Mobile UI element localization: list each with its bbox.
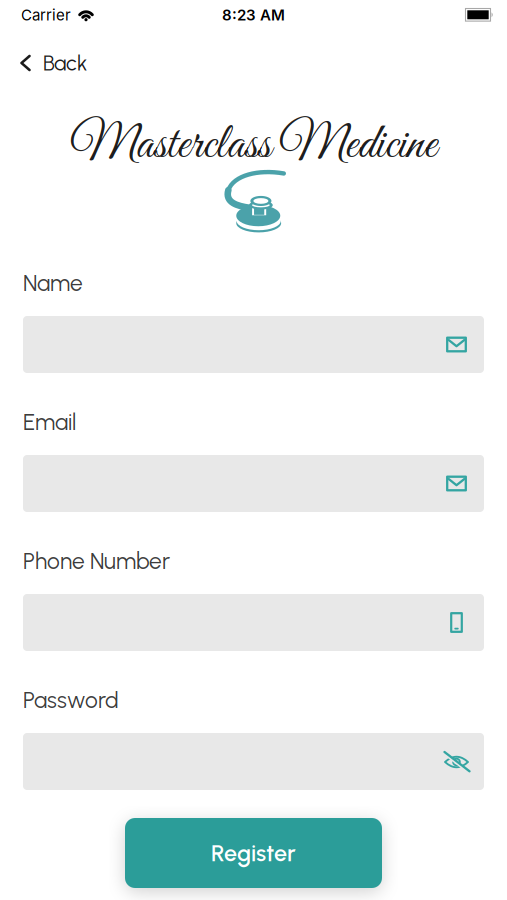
staticText: Carrier (21, 6, 71, 24)
staticText: Back (43, 50, 87, 76)
staticText: Name (23, 269, 83, 297)
staticText: Email (23, 408, 76, 436)
button[interactable]: Password (23, 733, 484, 790)
staticText: Phone Number (23, 547, 170, 575)
button[interactable]: Register (125, 818, 382, 888)
button[interactable]: Back (0, 50, 87, 76)
staticText: 8:23 AM (222, 6, 285, 24)
button[interactable]: Phone Number (23, 594, 484, 651)
button[interactable]: Name (23, 316, 484, 373)
staticText: Password (23, 686, 119, 714)
button[interactable]: Email (23, 455, 484, 512)
staticText: Masterclass Medicine (70, 115, 437, 177)
staticText: Register (211, 839, 296, 867)
